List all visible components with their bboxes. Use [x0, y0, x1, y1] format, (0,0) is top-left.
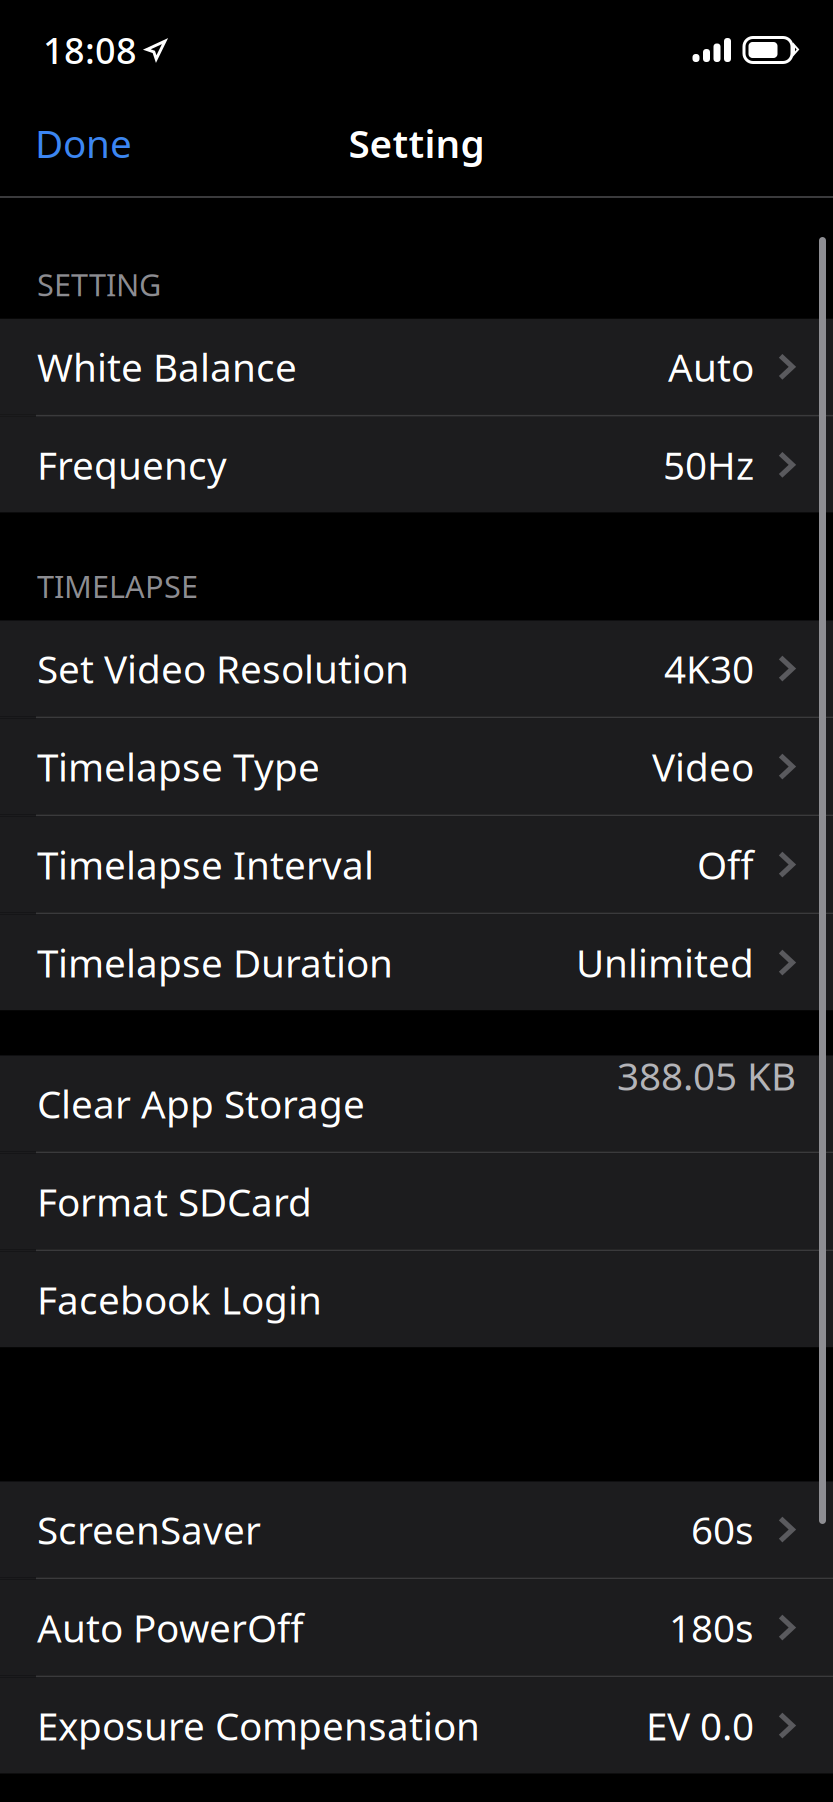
staticText: 60s: [691, 1504, 754, 1555]
staticText: Setting: [348, 117, 484, 169]
staticText: Auto: [668, 341, 754, 392]
button[interactable]: ScreenSaver: [0, 1481, 833, 1577]
staticText: TIMELAPSE: [37, 566, 198, 606]
button[interactable]: Timelapse Duration: [0, 914, 833, 1010]
button[interactable]: Timelapse Interval: [0, 816, 833, 912]
button[interactable]: Timelapse Type: [0, 718, 833, 814]
staticText: 4K30: [664, 643, 754, 694]
staticText: Off: [697, 839, 754, 890]
button[interactable]: White Balance: [0, 319, 833, 415]
staticText: Done: [35, 117, 132, 169]
staticText: Format SDCard: [37, 1176, 312, 1227]
staticText: White Balance: [37, 341, 297, 392]
staticText: ScreenSaver: [37, 1504, 261, 1555]
staticText: 180s: [669, 1602, 754, 1653]
staticText: 388.05 KB: [617, 1050, 796, 1101]
staticText: Timelapse Interval: [37, 839, 374, 890]
staticText: Unlimited: [576, 937, 754, 988]
button[interactable]: Facebook Login: [0, 1251, 833, 1347]
staticText: Frequency: [37, 439, 227, 490]
staticText: Auto PowerOff: [37, 1602, 304, 1653]
staticText: Video: [652, 741, 754, 792]
staticText: 18:08: [43, 26, 137, 74]
staticText: Exposure Compensation: [37, 1700, 480, 1751]
button[interactable]: Set Video Resolution: [0, 620, 833, 716]
button[interactable]: Exposure Compensation: [0, 1677, 833, 1773]
staticText: SETTING: [37, 264, 161, 305]
staticText: Clear App Storage: [37, 1078, 365, 1129]
staticText: 50Hz: [663, 439, 754, 490]
button[interactable]: Format SDCard: [0, 1153, 833, 1249]
button[interactable]: Auto PowerOff: [0, 1579, 833, 1675]
button[interactable]: Clear App Storage: [0, 1055, 833, 1151]
staticText: EV 0.0: [646, 1700, 754, 1751]
staticText: Set Video Resolution: [37, 643, 409, 694]
staticText: Timelapse Type: [37, 741, 320, 792]
button[interactable]: Done: [0, 95, 160, 191]
button[interactable]: Frequency: [0, 417, 833, 513]
staticText: Facebook Login: [37, 1274, 322, 1325]
staticText: Timelapse Duration: [37, 937, 393, 988]
